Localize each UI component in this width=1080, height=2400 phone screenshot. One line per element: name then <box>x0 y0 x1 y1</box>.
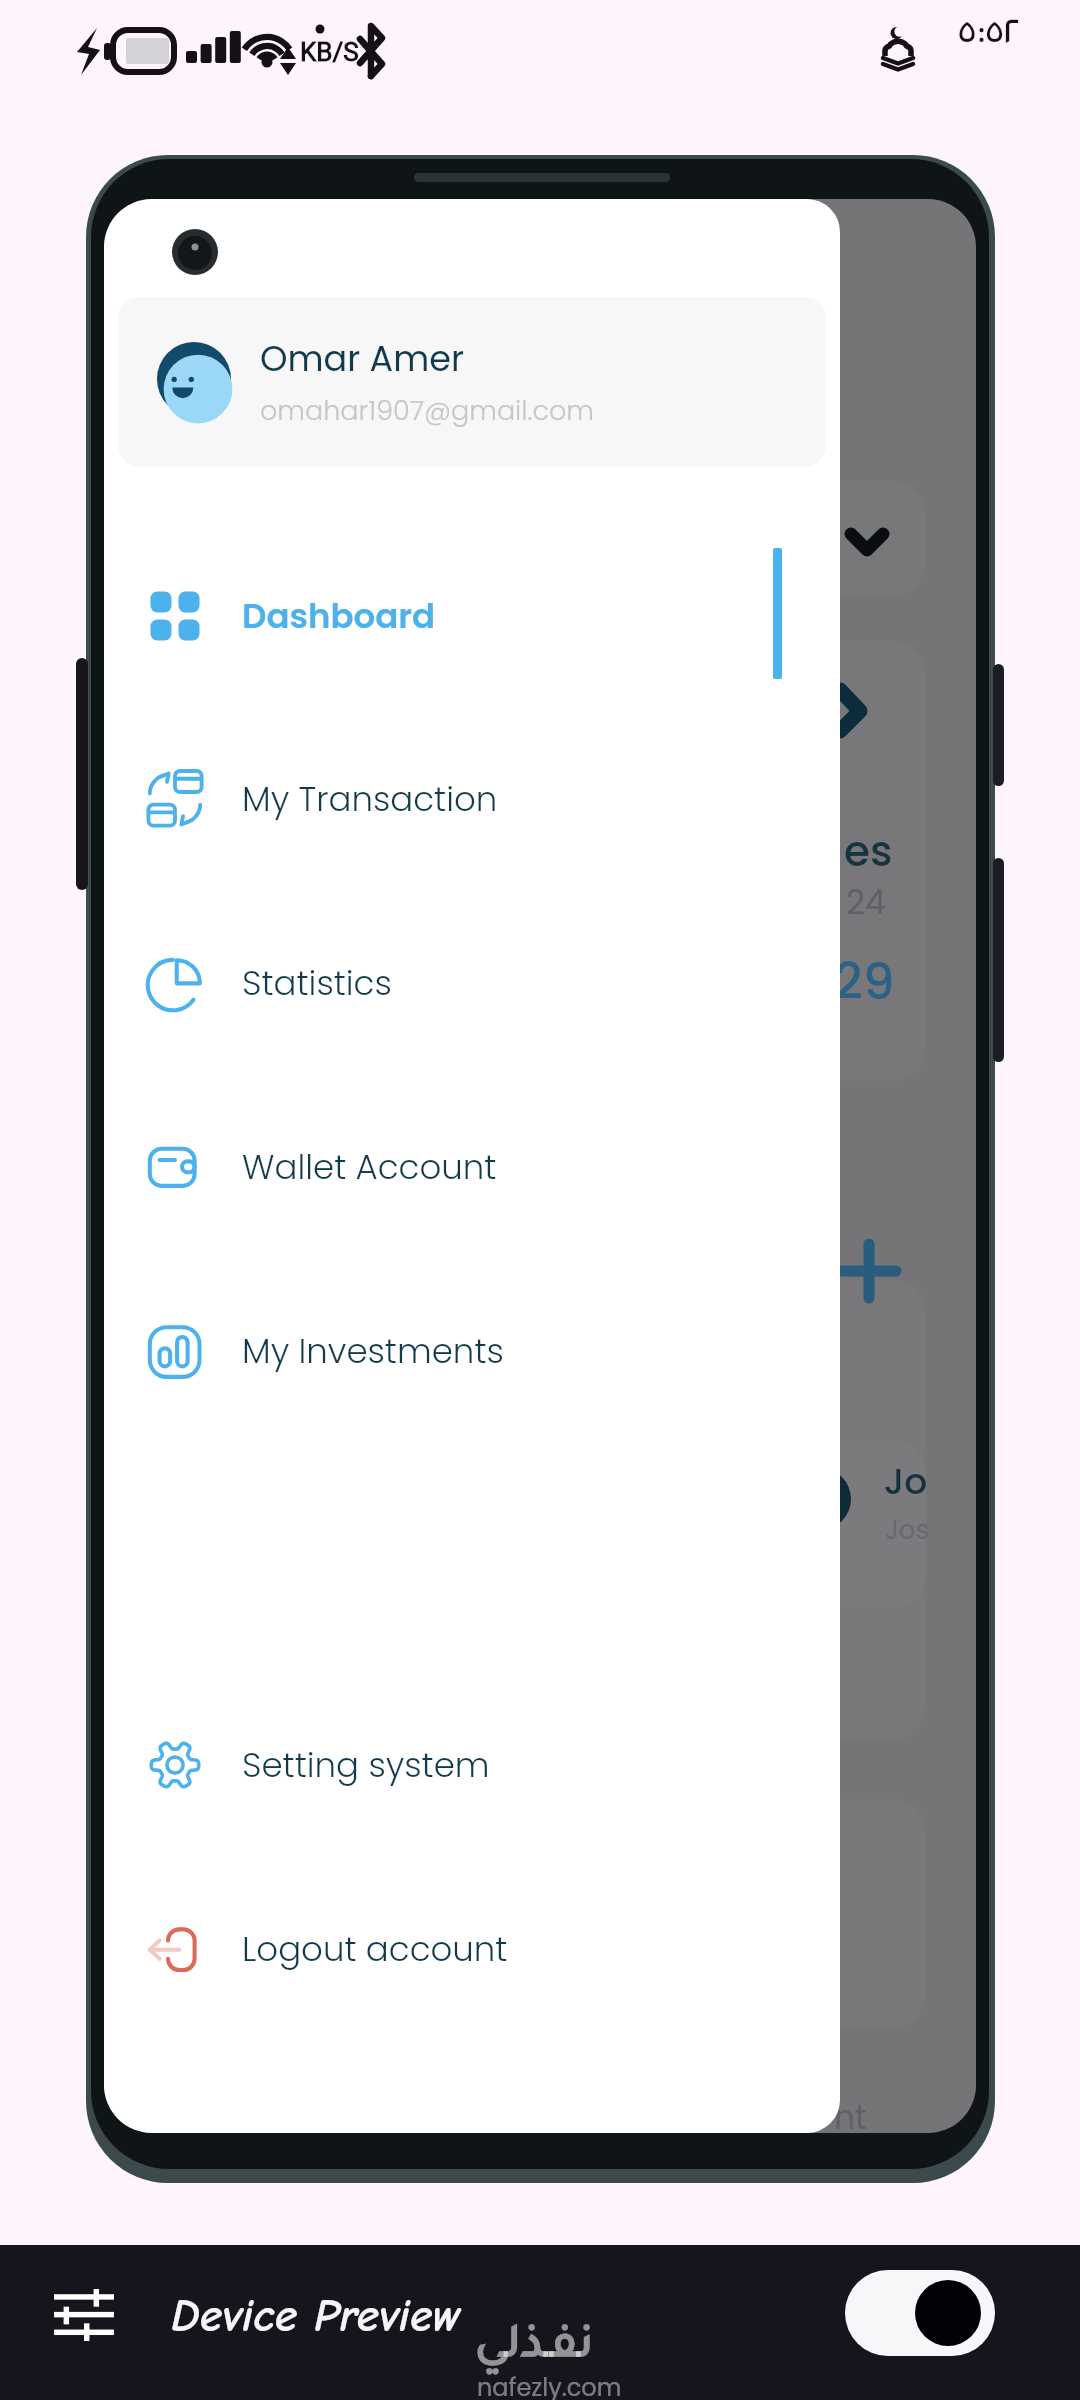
staticText: omahar1907@gmail.com <box>260 392 594 430</box>
button[interactable]: Wallet Account <box>104 1079 840 1255</box>
staticText: Dashboard <box>242 592 436 640</box>
button[interactable]: Omar Amer <box>118 297 826 467</box>
button[interactable]: Logout account <box>104 1861 840 2037</box>
staticText: Device Preview <box>171 2290 461 2343</box>
staticText: نفـذلي <box>475 2325 594 2373</box>
staticText: es <box>844 822 893 881</box>
staticText: Wallet Account <box>242 1143 497 1191</box>
staticText: Statistics <box>242 959 392 1007</box>
staticText: Jos <box>885 1512 929 1548</box>
button[interactable]: Dashboard <box>104 528 840 704</box>
button[interactable]: Statistics <box>104 895 840 1071</box>
staticText: nafezly.com <box>477 2371 622 2400</box>
staticText: 24 <box>846 879 886 925</box>
button[interactable]: My Investments <box>104 1263 840 1439</box>
button[interactable]: Preview settings <box>54 2289 114 2341</box>
staticText: 29 <box>834 947 895 1017</box>
staticText: Omar Amer <box>260 334 465 383</box>
staticText: KB/S <box>300 37 359 67</box>
staticText: My Investments <box>242 1327 504 1375</box>
button[interactable]: My Transaction <box>104 711 840 887</box>
staticText: ‭٥:٥٢‬ <box>958 16 1020 56</box>
button[interactable]: Toggle device preview <box>845 2270 995 2356</box>
staticText: Setting system <box>242 1741 490 1789</box>
staticText: Logout account <box>242 1925 508 1973</box>
staticText: My Transaction <box>242 775 498 823</box>
staticText: Jo <box>884 1456 928 1506</box>
button[interactable]: Setting system <box>104 1677 840 1853</box>
staticText: nt <box>834 2094 868 2133</box>
